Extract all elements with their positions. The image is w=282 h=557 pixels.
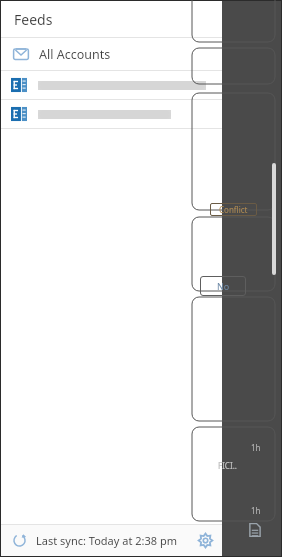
- button[interactable]: Document: [247, 522, 263, 538]
- button[interactable]: [1, 100, 222, 128]
- staticText: Last sync: Today at 2:38 pm: [36, 533, 177, 548]
- staticText: No: [217, 280, 230, 292]
- staticText: 1h: [251, 505, 261, 516]
- button[interactable]: [1, 71, 222, 99]
- button[interactable]: All Accounts: [1, 38, 222, 70]
- staticText: Feeds: [14, 10, 53, 29]
- staticText: 1h: [251, 442, 261, 453]
- button[interactable]: Last sync: Today at 2:38 pm: [1, 525, 188, 556]
- staticText: FICI..: [218, 460, 237, 471]
- staticText: Conflict: [219, 204, 248, 215]
- button[interactable]: Settings: [188, 525, 222, 556]
- staticText: All Accounts: [39, 46, 111, 63]
